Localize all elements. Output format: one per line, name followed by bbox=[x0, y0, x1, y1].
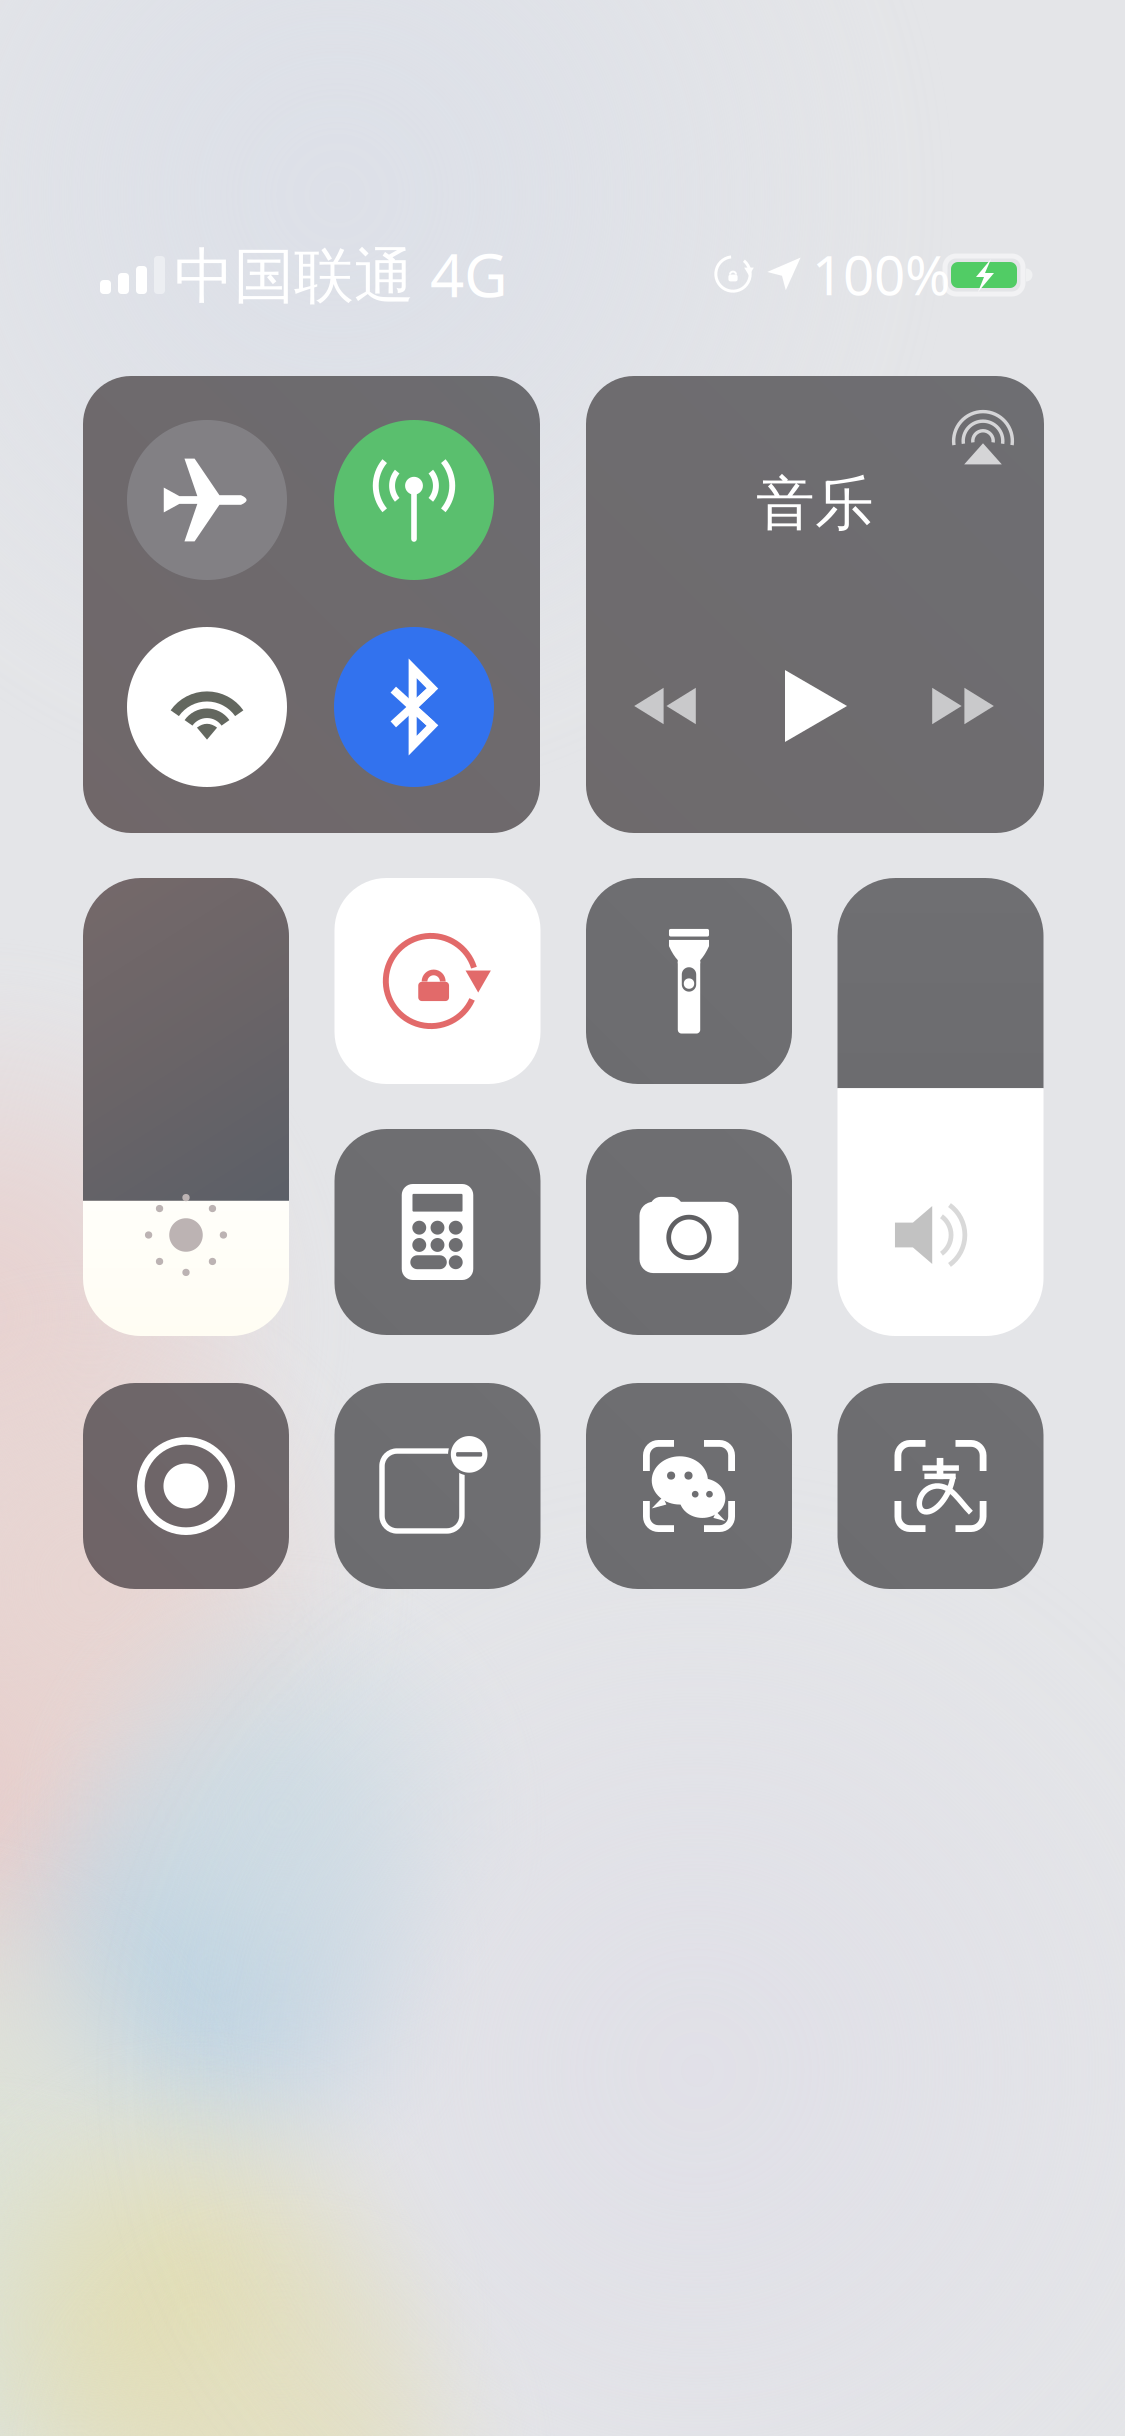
button[interactable]: Play bbox=[761, 651, 871, 761]
button[interactable]: WeChat Scan bbox=[586, 1383, 792, 1589]
button[interactable]: Camera bbox=[586, 1129, 792, 1335]
button[interactable]: Alipay Scan bbox=[837, 1383, 1043, 1589]
button[interactable]: Rotation Lock bbox=[334, 878, 540, 1084]
button[interactable]: Wi-Fi bbox=[107, 607, 307, 807]
button[interactable]: Screen Recording bbox=[83, 1383, 289, 1589]
staticText: 中国联通 4G bbox=[174, 234, 508, 314]
button[interactable]: Airplane Mode bbox=[107, 400, 307, 600]
button[interactable]: Volume bbox=[837, 878, 1043, 1336]
button[interactable]: Brightness bbox=[83, 878, 289, 1336]
button[interactable]: Rewind bbox=[610, 651, 720, 761]
button[interactable]: Low Power Mode bbox=[334, 1383, 540, 1589]
button[interactable]: AirPlay bbox=[935, 389, 1031, 485]
staticText: 音乐 bbox=[756, 468, 874, 540]
button[interactable]: Calculator bbox=[334, 1129, 540, 1335]
button[interactable]: Cellular Data bbox=[314, 400, 514, 600]
staticText: 100% bbox=[812, 238, 950, 310]
button[interactable]: Flashlight bbox=[586, 878, 792, 1084]
button[interactable]: Bluetooth bbox=[314, 607, 514, 807]
button[interactable]: Fast Forward bbox=[908, 651, 1018, 761]
